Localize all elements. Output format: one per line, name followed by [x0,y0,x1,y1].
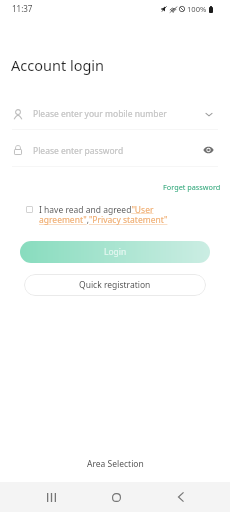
staticText: Please enter your mobile number [33,108,167,120]
button[interactable]: Forget password [158,178,226,196]
staticText: Quick registration [79,279,151,291]
staticText: 11:37 [12,3,33,14]
staticText: I have read and agreed"User agreement","… [39,204,171,226]
button[interactable]: Back [163,482,199,512]
button[interactable]: Show password [197,139,219,161]
button[interactable]: Agree to terms [26,206,33,213]
button[interactable]: Login [20,241,210,263]
staticText: Forget password [163,182,221,192]
button[interactable]: Select country code [198,103,220,125]
staticText: Login [104,246,127,258]
staticText: Account login [11,55,105,75]
staticText: Area Selection [87,458,144,470]
button[interactable]: Recents [33,482,69,512]
staticText: 100% [187,4,207,14]
staticText: Please enter password [33,145,124,157]
button[interactable]: Quick registration [24,274,206,296]
button[interactable]: Home [98,482,134,512]
button[interactable]: Area Selection [77,454,154,474]
